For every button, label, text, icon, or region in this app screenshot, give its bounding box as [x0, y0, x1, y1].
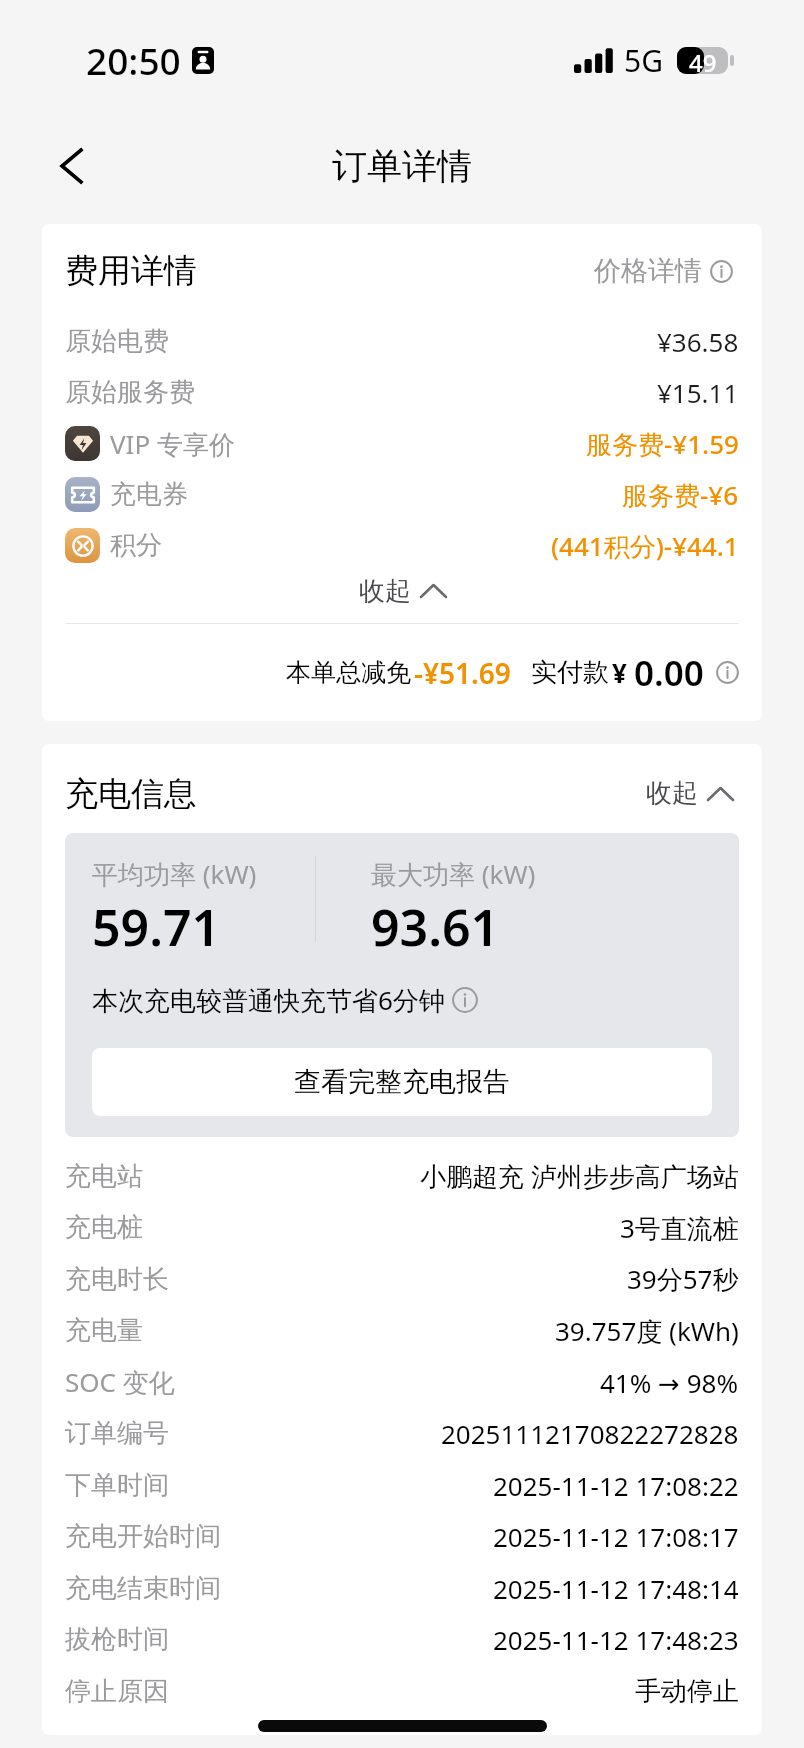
button[interactable]: Back [40, 135, 102, 197]
button[interactable]: 充电券 [42, 469, 762, 520]
staticText: 服务费-¥6 [622, 477, 739, 513]
staticText: ¥15.11 [657, 375, 739, 410]
staticText: 本次充电较普通快充节省6分钟 [92, 982, 445, 1018]
button[interactable]: 拔枪时间 [42, 1614, 762, 1665]
button[interactable]: 充电站 [42, 1150, 762, 1202]
staticText: 充电信息 [65, 773, 197, 815]
button[interactable]: VIP 专享价 [42, 418, 762, 469]
staticText: 充电时长 [65, 1263, 169, 1296]
staticText: 服务费-¥1.59 [586, 426, 739, 462]
staticText: 39.757度 (kWh) [555, 1313, 739, 1349]
staticText: 平均功率 (kW) [92, 856, 257, 892]
staticText: 查看完整充电报告 [294, 1065, 510, 1099]
staticText: 原始服务费 [65, 376, 195, 409]
staticText: 5G [624, 40, 663, 81]
staticText: ¥ [612, 655, 627, 690]
staticText: 59.71 [92, 893, 221, 961]
staticText: 拔枪时间 [65, 1623, 169, 1656]
staticText: 20251112170822272828 [441, 1416, 739, 1451]
button[interactable]: 充电时长 [42, 1253, 762, 1305]
button[interactable]: 原始电费 [42, 316, 762, 367]
staticText: 充电站 [65, 1160, 143, 1193]
button[interactable]: 查看完整充电报告 [92, 1048, 712, 1116]
staticText: 手动停止 [635, 1675, 739, 1708]
staticText: 本单总减免 [286, 657, 411, 688]
staticText: 原始电费 [65, 325, 169, 358]
staticText: 积分 [110, 529, 162, 562]
staticText: 93.61 [371, 893, 500, 961]
button[interactable]: 价格详情 [588, 244, 739, 298]
staticText: 收起 [646, 777, 698, 810]
staticText: 下单时间 [65, 1469, 169, 1502]
staticText: ¥36.58 [657, 324, 739, 359]
staticText: 收起 [359, 575, 411, 608]
staticText: 充电券 [110, 478, 188, 511]
staticText: -¥51.69 [414, 654, 511, 692]
staticText: 订单编号 [65, 1417, 169, 1450]
staticText: 0.00 [634, 649, 704, 697]
staticText: (441积分)-¥44.1 [551, 528, 739, 564]
button[interactable]: 积分 [42, 520, 762, 571]
button[interactable]: 充电桩 [42, 1202, 762, 1253]
staticText: 2025-11-12 17:48:14 [493, 1571, 739, 1606]
staticText: 充电桩 [65, 1211, 143, 1244]
button[interactable]: 停止原因 [42, 1665, 762, 1717]
button[interactable]: 原始服务费 [42, 367, 762, 418]
staticText: VIP 专享价 [110, 426, 235, 462]
staticText: 2025-11-12 17:08:22 [493, 1468, 739, 1503]
staticText: 2025-11-12 17:48:23 [493, 1622, 739, 1657]
staticText: 充电开始时间 [65, 1520, 221, 1553]
staticText: 停止原因 [65, 1675, 169, 1708]
staticText: 小鹏超充 泸州步步高广场站 [420, 1158, 739, 1194]
button[interactable]: 充电结束时间 [42, 1562, 762, 1614]
staticText: 充电量 [65, 1314, 143, 1347]
button[interactable]: 订单编号 [42, 1408, 762, 1459]
staticText: 价格详情 [594, 254, 702, 288]
button[interactable]: 下单时间 [42, 1459, 762, 1511]
staticText: 充电结束时间 [65, 1572, 221, 1605]
staticText: 20:50 [86, 35, 181, 85]
button[interactable]: 本次充电较普通快充节省6分钟 [92, 980, 478, 1020]
staticText: 实付款 [531, 656, 609, 689]
staticText: 39分57秒 [627, 1261, 739, 1297]
button[interactable]: 充电开始时间 [42, 1511, 762, 1562]
button[interactable]: 充电量 [42, 1305, 762, 1356]
staticText: 最大功率 (kW) [371, 856, 536, 892]
button[interactable]: 收起 [640, 767, 739, 820]
staticText: SOC 变化 [65, 1364, 175, 1400]
staticText: 费用详情 [65, 250, 197, 292]
staticText: 2025-11-12 17:08:17 [493, 1519, 739, 1554]
button[interactable]: SOC 变化 [42, 1356, 762, 1408]
staticText: 3号直流桩 [620, 1210, 739, 1246]
staticText: 41% → 98% [600, 1365, 739, 1400]
staticText: 49 [689, 46, 717, 73]
staticText: 订单详情 [332, 144, 472, 188]
button[interactable]: 收起 [42, 571, 762, 611]
